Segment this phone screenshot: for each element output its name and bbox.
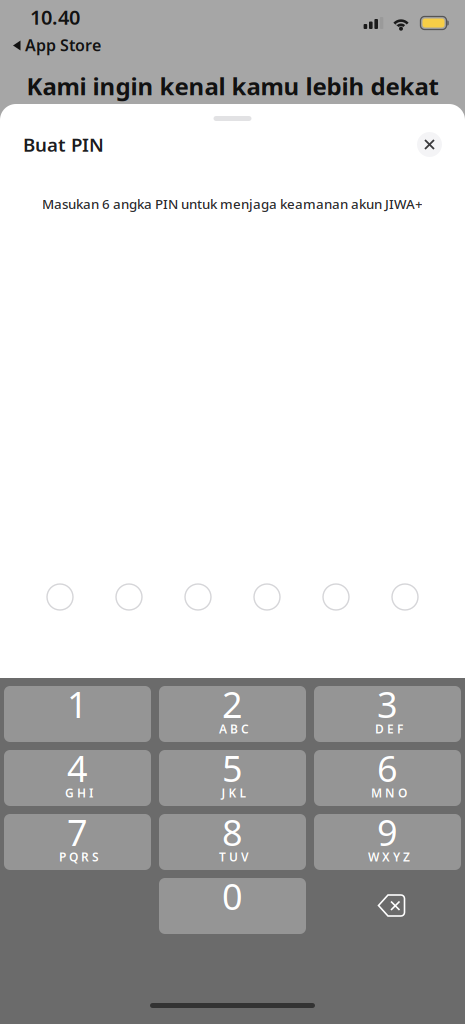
button[interactable]: 6: [314, 750, 461, 806]
staticText: Masukan 6 angka PIN untuk menjaga keaman…: [42, 195, 423, 213]
staticText: W X Y Z: [368, 849, 410, 865]
button[interactable]: 8: [159, 814, 306, 870]
button[interactable]: 1: [4, 686, 151, 742]
button[interactable]: 7: [4, 814, 151, 870]
staticText: 0: [222, 872, 243, 920]
button[interactable]: 3: [314, 686, 461, 742]
staticText: D E F: [375, 721, 403, 737]
staticText: A B C: [219, 721, 249, 737]
staticText: 4: [67, 744, 88, 792]
staticText: App Store: [25, 34, 101, 56]
button[interactable]: Close: [417, 132, 442, 157]
staticText: G H I: [65, 785, 93, 801]
button[interactable]: 9: [314, 814, 461, 870]
staticText: 9: [377, 808, 398, 856]
staticText: M N O: [371, 785, 407, 801]
button[interactable]: 4: [4, 750, 151, 806]
staticText: 10.40: [30, 4, 80, 30]
staticText: T U V: [219, 849, 249, 865]
staticText: 2: [222, 680, 243, 728]
staticText: 7: [67, 808, 88, 856]
button[interactable]: 2: [159, 686, 306, 742]
staticText: 8: [222, 808, 243, 856]
staticText: Kami ingin kenal kamu lebih dekat: [26, 70, 438, 102]
button[interactable]: Delete: [314, 878, 461, 934]
button[interactable]: 5: [159, 750, 306, 806]
button[interactable]: 0: [159, 878, 306, 934]
staticText: 6: [377, 744, 398, 792]
staticText: 3: [377, 680, 398, 728]
staticText: 5: [222, 744, 243, 792]
staticText: J K L: [221, 785, 246, 801]
staticText: Buat PIN: [23, 132, 104, 157]
staticText: 1: [67, 680, 88, 728]
staticText: P Q R S: [59, 849, 99, 865]
